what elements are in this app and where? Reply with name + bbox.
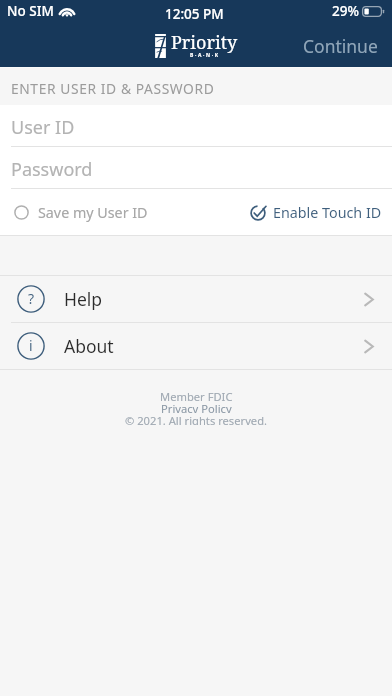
button[interactable]: Privacy Policy xyxy=(161,401,232,413)
staticText: 29% xyxy=(332,2,359,20)
button[interactable]: Enable Touch ID xyxy=(250,203,392,222)
staticText: About xyxy=(64,334,114,358)
staticText: Save my User ID xyxy=(38,203,148,222)
staticText: Priority xyxy=(171,30,238,55)
staticText: No SIM xyxy=(7,2,54,20)
button[interactable]: i xyxy=(0,323,392,369)
staticText: Password xyxy=(11,157,93,182)
staticText: Continue xyxy=(303,34,378,55)
button[interactable]: ? xyxy=(0,276,392,322)
button[interactable]: Continue xyxy=(287,24,392,67)
staticText: i xyxy=(29,336,33,355)
staticText: User ID xyxy=(11,115,75,140)
staticText: © 2021. All rights reserved. xyxy=(125,413,268,425)
staticText: Privacy Policy xyxy=(161,401,232,413)
staticText: Member FDIC xyxy=(160,389,233,401)
button[interactable]: User ID xyxy=(0,105,392,146)
staticText: B·A·N·K xyxy=(190,52,220,59)
staticText: Enable Touch ID xyxy=(273,203,382,222)
button[interactable]: Password xyxy=(0,147,392,188)
button[interactable]: Save my User ID xyxy=(0,203,148,222)
staticText: ENTER USER ID & PASSWORD xyxy=(11,79,215,98)
staticText: ? xyxy=(28,289,35,308)
staticText: 12:05 PM xyxy=(165,5,224,23)
staticText: Help xyxy=(64,287,103,311)
